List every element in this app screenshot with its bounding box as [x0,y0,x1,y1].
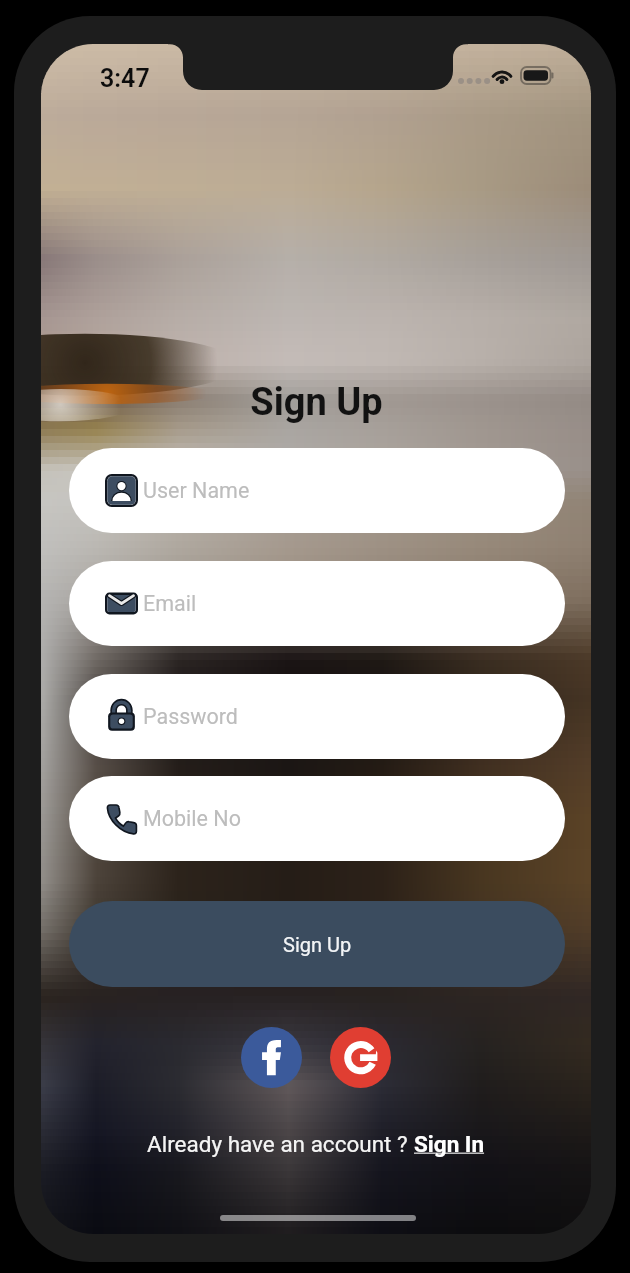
staticText: Email [143,591,197,616]
button[interactable]: Sign In [414,1131,485,1157]
button[interactable]: Password [69,674,565,759]
button[interactable]: Email [69,561,565,646]
staticText: Sign Up [250,380,383,425]
button[interactable]: Sign up with Facebook [241,1027,302,1088]
button[interactable]: Sign Up [69,901,565,987]
staticText: 3:47 [100,64,150,93]
button[interactable]: Mobile No [69,776,565,861]
button[interactable]: User Name [69,448,565,533]
staticText: Sign In [414,1131,485,1157]
staticText: Already have an account ? [147,1131,414,1157]
staticText: Password [143,704,238,729]
staticText: User Name [143,478,250,503]
staticText: Mobile No [143,806,241,831]
staticText: Sign Up [283,933,352,956]
button[interactable]: Sign up with Google [330,1027,391,1088]
